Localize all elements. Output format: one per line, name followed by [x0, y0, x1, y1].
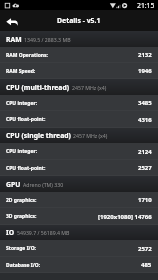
staticText: GPU: [6, 180, 21, 189]
staticText: RAM: [6, 35, 22, 44]
staticText: CPU (single thread): [6, 131, 71, 140]
staticText: 2527: [138, 164, 152, 172]
button[interactable]: CPU (single thread): [0, 128, 158, 143]
button[interactable]: CPU (multi-thread): [0, 79, 158, 95]
button[interactable]: CPU float-point:: [0, 111, 158, 128]
staticText: CPU (multi-thread): [6, 83, 70, 92]
button[interactable]: RAM Operations:: [0, 47, 158, 63]
staticText: Adreno (TM) 330: [23, 181, 64, 188]
staticText: 21:15: [137, 1, 155, 10]
staticText: Details - v5.1: [57, 16, 101, 25]
button[interactable]: 3D graphics:: [0, 208, 158, 225]
staticText: 2124: [138, 148, 152, 156]
staticText: 2132: [138, 51, 152, 59]
staticText: 3D graphics:: [6, 213, 37, 220]
button[interactable]: Storage I/O:: [0, 240, 158, 257]
button[interactable]: CPU float-point:: [0, 160, 158, 176]
button[interactable]: GPU: [0, 176, 158, 192]
staticText: 4316: [138, 116, 152, 124]
staticText: 2457 MHz (x4): [73, 132, 108, 139]
staticText: 54939.7 / 56189.4 MB: [17, 229, 70, 236]
staticText: Storage I/O:: [6, 245, 37, 252]
button[interactable]: 2D graphics:: [0, 192, 158, 208]
staticText: 1946: [138, 67, 152, 75]
staticText: RAM Operations:: [6, 52, 48, 59]
staticText: RAM Speed:: [6, 68, 36, 75]
staticText: 3485: [138, 99, 152, 107]
staticText: [1920x1080] 14766: [98, 213, 152, 221]
button[interactable]: Back: [0, 12, 24, 31]
staticText: 1710: [138, 196, 152, 204]
staticText: 2D graphics:: [6, 197, 37, 204]
staticText: 485: [141, 261, 152, 269]
staticText: CPU float-point:: [6, 165, 46, 172]
staticText: 1349.5 / 2883.3 MB: [24, 36, 71, 43]
button[interactable]: RAM: [0, 31, 158, 47]
button[interactable]: CPU integer:: [0, 95, 158, 111]
button[interactable]: IO: [0, 225, 158, 240]
staticText: 2457 MHz (x4): [72, 84, 107, 91]
staticText: CPU float-point:: [6, 116, 46, 123]
staticText: 2572: [138, 245, 152, 253]
staticText: Database I/O:: [6, 262, 41, 269]
staticText: CPU integer:: [6, 100, 38, 107]
button[interactable]: CPU integer:: [0, 143, 158, 160]
button[interactable]: RAM Speed:: [0, 63, 158, 79]
button[interactable]: Database I/O:: [0, 257, 158, 273]
staticText: CPU integer:: [6, 148, 38, 155]
staticText: IO: [6, 228, 15, 237]
